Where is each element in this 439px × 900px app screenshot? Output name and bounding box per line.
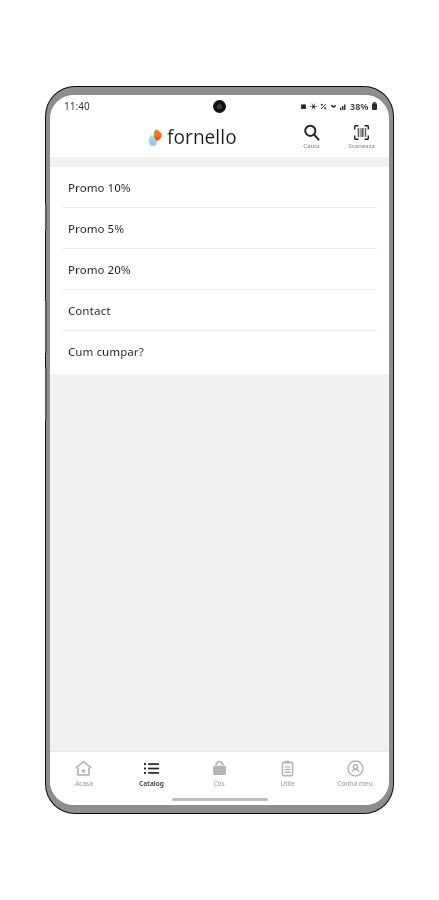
staticText: Promo 10%: [68, 180, 131, 196]
button[interactable]: Cum cumpar?: [50, 331, 389, 372]
staticText: Acasa: [75, 779, 93, 788]
staticText: Promo 20%: [68, 262, 131, 278]
staticText: Scaneaza: [348, 142, 375, 150]
staticText: Utile: [280, 779, 295, 788]
button[interactable]: Acasa: [50, 754, 117, 793]
staticText: 38%: [350, 100, 369, 112]
staticText: fornello: [167, 124, 237, 150]
staticText: Promo 5%: [68, 221, 124, 237]
button[interactable]: Promo 10%: [50, 167, 389, 208]
button[interactable]: Promo 5%: [50, 208, 389, 249]
staticText: Catalog: [139, 779, 164, 788]
staticText: Cauta: [303, 142, 320, 150]
staticText: Contact: [68, 303, 111, 319]
staticText: 11:40: [64, 99, 90, 113]
button[interactable]: Utile: [253, 754, 321, 793]
button[interactable]: Scaneaza: [339, 122, 383, 152]
staticText: Cum cumpar?: [68, 344, 144, 360]
button[interactable]: Promo 20%: [50, 249, 389, 290]
staticText: Cos: [213, 779, 225, 788]
button[interactable]: Cauta: [289, 122, 333, 152]
button[interactable]: Cos: [185, 754, 253, 793]
button[interactable]: Contact: [50, 290, 389, 331]
button[interactable]: Catalog: [117, 754, 185, 793]
button[interactable]: Contul meu: [321, 754, 389, 793]
staticText: Contul meu: [337, 779, 373, 788]
